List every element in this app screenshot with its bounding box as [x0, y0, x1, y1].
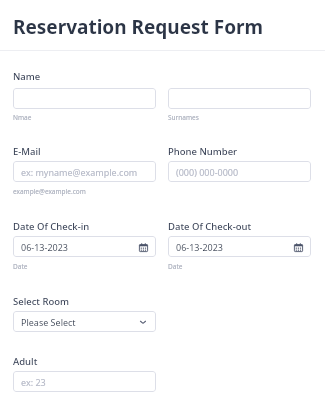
button[interactable]: ex: 23: [13, 371, 156, 392]
staticText: 06-13-2023: [21, 241, 68, 253]
staticText: Nmae: [13, 113, 32, 122]
staticText: Adult: [13, 355, 38, 368]
staticText: example@example.com: [13, 187, 86, 196]
staticText: Please Select: [21, 316, 76, 328]
staticText: ex: myname@example.com: [21, 166, 138, 178]
button[interactable]: [13, 88, 156, 109]
other: Expand room options: [137, 316, 149, 328]
staticText: (000) 000-0000: [176, 166, 239, 178]
staticText: Date Of Check-out: [168, 220, 252, 233]
button[interactable]: 06-13-2023: [168, 236, 311, 257]
button[interactable]: Please Select: [13, 311, 156, 332]
staticText: Name: [13, 70, 41, 83]
staticText: ex: 23: [21, 376, 46, 388]
staticText: Date: [13, 262, 28, 271]
staticText: Surnames: [168, 113, 199, 122]
button[interactable]: Open check-out date picker: [292, 241, 304, 253]
staticText: 06-13-2023: [176, 241, 223, 253]
staticText: E-Mail: [13, 145, 41, 158]
button[interactable]: ex: myname@example.com: [13, 161, 156, 182]
button[interactable]: 06-13-2023: [13, 236, 156, 257]
staticText: Date: [168, 262, 183, 271]
button[interactable]: Open check-in date picker: [137, 241, 149, 253]
staticText: Reservation Request Form: [13, 14, 264, 40]
staticText: Select Room: [13, 295, 70, 308]
staticText: Date Of Check-in: [13, 220, 90, 233]
staticText: Phone Number: [168, 145, 238, 158]
button[interactable]: (000) 000-0000: [168, 161, 311, 182]
button[interactable]: [168, 88, 311, 109]
